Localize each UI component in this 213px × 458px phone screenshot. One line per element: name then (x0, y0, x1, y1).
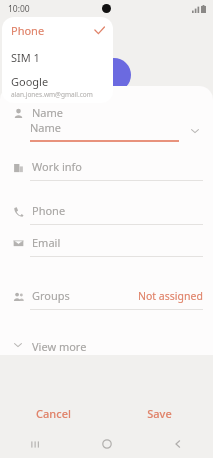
staticText: Save (147, 406, 172, 421)
staticText: Phone (32, 203, 66, 218)
button[interactable]: Recent apps (0, 430, 71, 458)
button[interactable]: Google (2, 71, 113, 99)
staticText: Groups (32, 288, 138, 303)
button[interactable]: Email (0, 235, 213, 257)
staticText: Google (11, 74, 49, 89)
staticText: 10:00 (8, 3, 30, 15)
button[interactable]: Name (0, 105, 213, 120)
button[interactable]: SIM 1 (2, 43, 113, 71)
staticText: Phone (11, 23, 94, 38)
staticText: View more (32, 339, 87, 351)
staticText: Email (32, 235, 61, 250)
button[interactable]: Contact photo (97, 58, 131, 92)
staticText: Work info (32, 159, 83, 174)
button[interactable]: Groups (0, 288, 213, 310)
staticText: Name (32, 105, 64, 120)
button[interactable]: Name (0, 120, 213, 142)
button[interactable]: Save (106, 399, 213, 427)
button[interactable]: Work info (0, 159, 213, 181)
staticText: Not assigned (138, 289, 203, 303)
button[interactable]: Back (142, 430, 213, 458)
button[interactable]: Expand name (187, 123, 203, 139)
button[interactable]: View more (0, 335, 213, 355)
staticText: Name (30, 120, 62, 135)
button[interactable]: Phone (2, 17, 113, 43)
button[interactable]: Cancel (0, 399, 106, 427)
staticText: alan.jones.wm@gmail.com (11, 90, 93, 99)
button[interactable]: Phone (0, 203, 213, 225)
staticText: Cancel (36, 406, 71, 421)
staticText: SIM 1 (11, 50, 40, 65)
button[interactable]: Home (71, 430, 142, 458)
